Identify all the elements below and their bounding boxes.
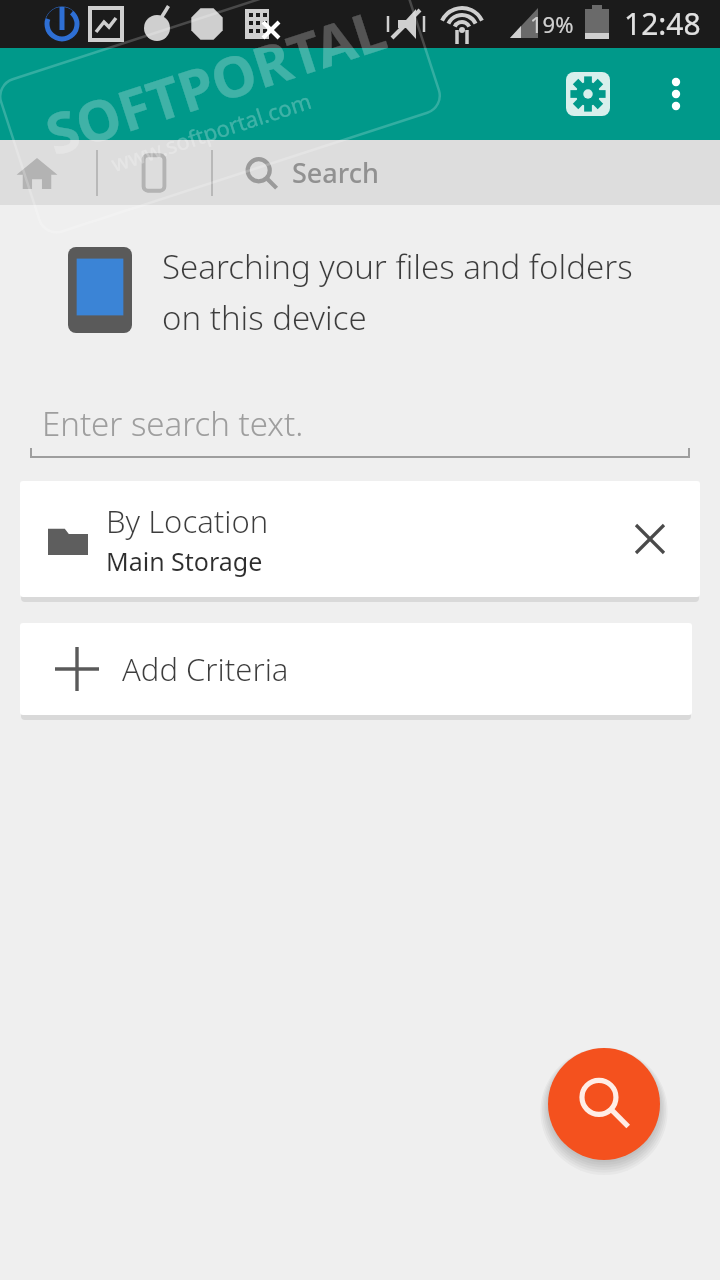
button[interactable]: Enter search text. [30,395,690,459]
button[interactable]: Home [6,142,68,204]
staticText: Main Storage [106,544,263,578]
staticText: By Location [106,500,269,542]
button[interactable]: By Location [20,481,700,597]
staticText: Enter search text. [42,401,304,446]
staticText: Searching your files and folders [162,244,633,289]
staticText: on this device [162,295,367,340]
staticText: www.softportal.com [107,85,315,178]
staticText: 19% [530,9,574,39]
button[interactable]: Search [548,1048,660,1160]
button[interactable]: Device [128,147,180,199]
staticText: SOFTPORTAL [36,0,395,171]
staticText: 12:48 [624,3,701,44]
button[interactable]: More options [654,72,698,116]
staticText: Add Criteria [122,648,289,690]
button[interactable]: Settings [566,72,610,116]
staticText: Search [292,154,379,191]
button[interactable]: Remove criteria [622,511,678,567]
button[interactable]: Search [238,140,488,205]
button[interactable]: Add Criteria [20,623,692,715]
